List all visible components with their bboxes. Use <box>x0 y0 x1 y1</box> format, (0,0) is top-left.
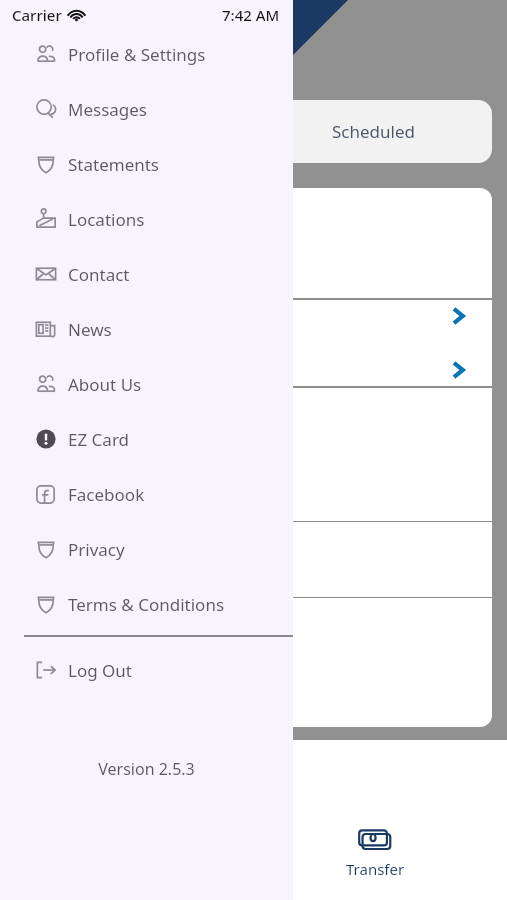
button[interactable]: Messages <box>0 83 293 135</box>
button[interactable]: Log Out <box>0 644 293 696</box>
staticText: Locations <box>68 208 145 231</box>
staticText: About Us <box>68 373 142 396</box>
staticText: Profile & Settings <box>68 43 206 66</box>
staticText: Transfer <box>346 859 405 879</box>
button[interactable]: Privacy <box>0 523 293 575</box>
staticText: Log Out <box>68 659 132 682</box>
button[interactable] <box>255 338 492 402</box>
staticText: EZ Card <box>68 428 130 451</box>
button[interactable]: News <box>0 303 293 355</box>
staticText: Statements <box>68 153 160 176</box>
staticText: News <box>68 318 112 341</box>
button[interactable]: Contact <box>0 248 293 300</box>
staticText: Contact <box>68 263 130 286</box>
button[interactable]: Statements <box>0 138 293 190</box>
button[interactable]: Terms & Conditions <box>0 578 293 630</box>
staticText: 7:42 AM <box>222 5 280 25</box>
staticText: Scheduled <box>332 120 415 143</box>
button[interactable]: Locations <box>0 193 293 245</box>
button[interactable]: Facebook <box>0 468 293 520</box>
staticText: Version 2.5.3 <box>0 758 293 780</box>
staticText: Privacy <box>68 538 125 561</box>
staticText: Terms & Conditions <box>68 593 225 616</box>
staticText: Messages <box>68 98 148 121</box>
button[interactable]: About Us <box>0 358 293 410</box>
staticText: Carrier <box>12 5 62 25</box>
button[interactable] <box>255 284 492 348</box>
button[interactable]: EZ Card <box>0 413 293 465</box>
button[interactable]: Profile & Settings <box>0 28 293 80</box>
button[interactable]: Scheduled <box>255 100 492 163</box>
button[interactable]: Transfer <box>325 825 425 895</box>
staticText: Facebook <box>68 483 145 506</box>
